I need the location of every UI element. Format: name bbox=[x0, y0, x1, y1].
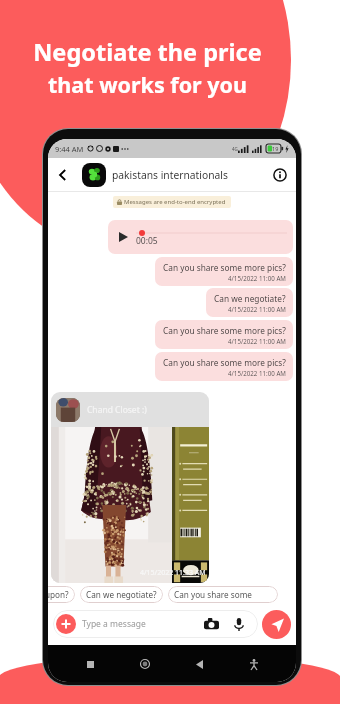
staticText: 4/15/2022 11:00 AM bbox=[228, 274, 286, 282]
button[interactable]: Home bbox=[133, 652, 157, 676]
staticText: Negotiate the price bbox=[33, 36, 262, 68]
button[interactable]: Can you share some more pics? bbox=[155, 320, 293, 349]
button[interactable]: Can you share some more pics? bbox=[155, 257, 293, 286]
staticText: 4/15/2022 11:00 AM bbox=[228, 305, 286, 313]
button[interactable]: Back bbox=[52, 165, 72, 185]
button[interactable]: 00:05 bbox=[108, 220, 293, 254]
staticText: pakistans internationals bbox=[112, 168, 228, 182]
staticText: Type a message bbox=[82, 618, 146, 630]
button[interactable]: Contact info bbox=[270, 165, 290, 185]
staticText: Can you share some more pics? bbox=[174, 589, 272, 600]
button[interactable]: coupon? bbox=[48, 586, 75, 603]
staticText: Can we negotiate? bbox=[214, 293, 286, 304]
button[interactable]: Send bbox=[262, 610, 291, 639]
button[interactable]: Can we negotiate? bbox=[206, 288, 293, 317]
button[interactable]: Chand Closet :) bbox=[51, 392, 209, 583]
button[interactable]: Can we negotiate? bbox=[80, 586, 163, 603]
staticText: Can you share some more pics? bbox=[163, 357, 286, 368]
staticText: 00:05 bbox=[136, 235, 158, 247]
staticText: coupon? bbox=[48, 589, 69, 600]
button[interactable]: Add attachment bbox=[56, 614, 76, 634]
staticText: Can you share some more pics? bbox=[163, 325, 286, 336]
button[interactable]: Back bbox=[187, 652, 211, 676]
staticText: Can you share some more pics? bbox=[163, 262, 286, 273]
staticText: 9:44 AM bbox=[55, 144, 84, 154]
button[interactable]: Accessibility bbox=[242, 652, 266, 676]
staticText: 19 bbox=[272, 145, 279, 152]
staticText: Can we negotiate? bbox=[86, 589, 157, 600]
button[interactable]: Camera bbox=[201, 614, 221, 634]
staticText: 4/15/2022 11:33 AM bbox=[140, 568, 206, 578]
staticText: 4/15/2022 11:00 AM bbox=[228, 369, 286, 377]
staticText: 4/15/2022 11:00 AM bbox=[228, 337, 286, 345]
button[interactable]: Recent apps bbox=[78, 652, 102, 676]
staticText: that works for you bbox=[48, 70, 247, 99]
button[interactable]: Voice message bbox=[230, 615, 248, 633]
button[interactable]: Can you share some more pics? bbox=[155, 352, 293, 381]
staticText: Chand Closet :) bbox=[87, 404, 147, 416]
button[interactable]: Can you share some more pics? bbox=[168, 586, 278, 603]
staticText: Messages are end-to-end encrypted bbox=[124, 198, 226, 206]
staticText: 4G bbox=[232, 146, 238, 152]
